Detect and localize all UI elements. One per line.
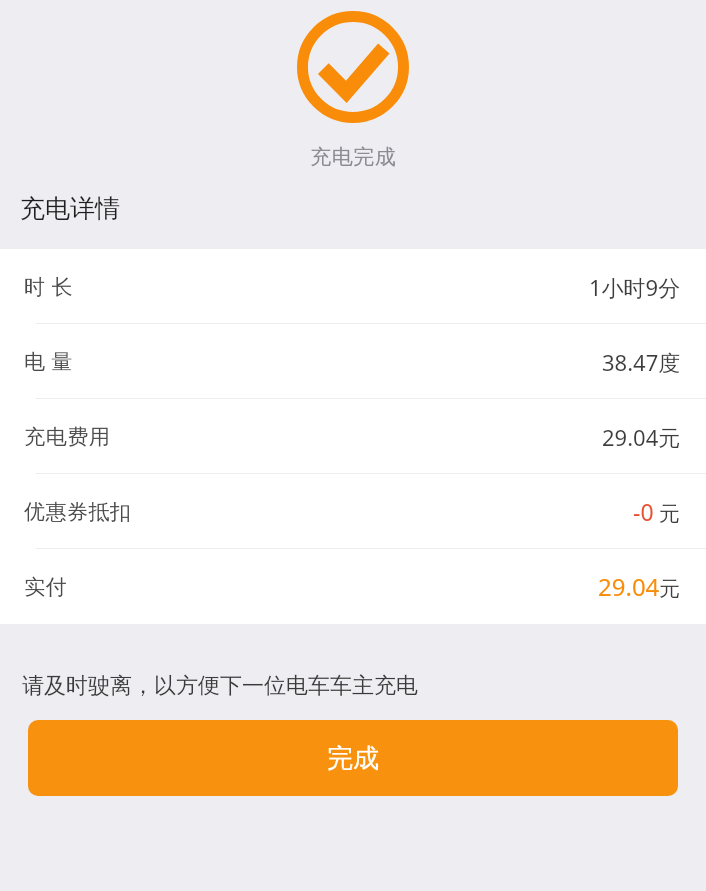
staticText: 完成 <box>327 742 379 775</box>
staticText: 1小时9分 <box>589 272 681 302</box>
button[interactable]: 充电费用 <box>0 399 706 474</box>
button[interactable]: 电 量 <box>0 324 706 399</box>
button[interactable]: 完成 <box>28 720 678 796</box>
staticText: 实付 <box>24 574 67 600</box>
button[interactable]: 实付 <box>0 549 706 624</box>
staticText: 29.04元 <box>598 570 681 603</box>
staticText: 时 长 <box>24 272 73 301</box>
staticText: 充电费用 <box>24 424 110 450</box>
staticText: 29.04元 <box>602 422 681 452</box>
button[interactable]: 优惠券抵扣 <box>0 474 706 549</box>
staticText: 优惠券抵扣 <box>24 499 132 525</box>
button[interactable]: 时 长 <box>0 249 706 324</box>
staticText: 充电详情 <box>20 193 120 224</box>
staticText: 请及时驶离，以方便下一位电车车主充电 <box>22 672 418 700</box>
staticText: 38.47度 <box>602 347 681 377</box>
staticText: 电 量 <box>24 347 73 376</box>
staticText: 充电完成 <box>310 144 396 170</box>
staticText: -0 元 <box>633 496 681 527</box>
